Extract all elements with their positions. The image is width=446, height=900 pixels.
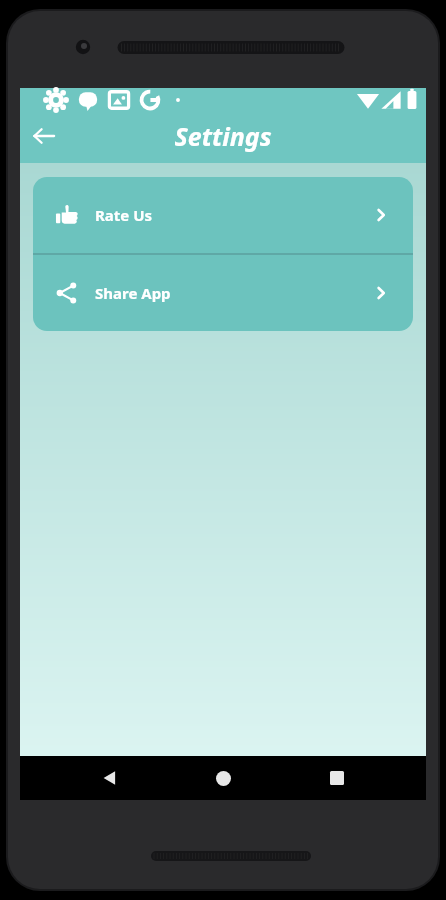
button[interactable]: Rate Us	[33, 177, 413, 253]
button[interactable]: Back	[20, 112, 68, 160]
button[interactable]: Share App	[33, 255, 413, 331]
staticText: Rate Us	[95, 205, 371, 225]
button[interactable]: Back	[86, 756, 134, 800]
staticText: Share App	[95, 283, 371, 303]
button[interactable]: Home	[199, 756, 247, 800]
staticText: Settings	[20, 119, 426, 153]
button[interactable]: Recent apps	[313, 756, 361, 800]
